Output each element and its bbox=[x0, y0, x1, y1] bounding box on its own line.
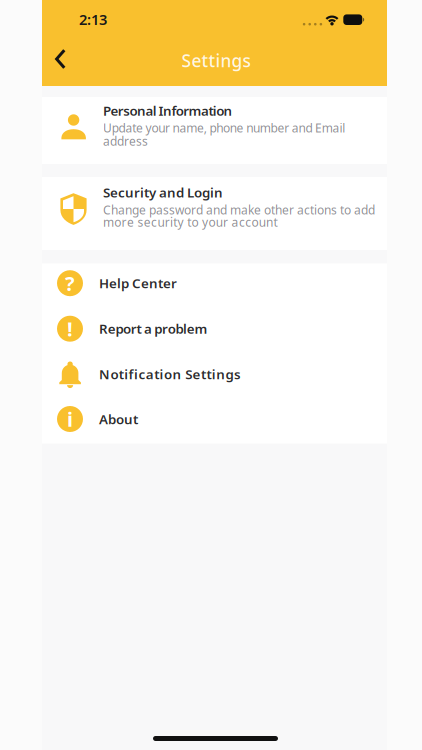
button[interactable]: i bbox=[42, 396, 387, 441]
button[interactable]: Back bbox=[44, 42, 78, 76]
staticText: Personal Information bbox=[103, 102, 233, 119]
staticText: About bbox=[99, 410, 138, 428]
staticText: i bbox=[67, 406, 73, 432]
staticText: ! bbox=[67, 315, 73, 342]
button[interactable]: Notification Settings bbox=[42, 351, 387, 396]
staticText: address bbox=[103, 133, 148, 149]
staticText: Settings bbox=[181, 49, 250, 72]
button[interactable] bbox=[42, 177, 387, 250]
button[interactable]: ? bbox=[42, 261, 387, 306]
staticText: Update your name, phone number and Email bbox=[103, 120, 345, 136]
staticText: Report a problem bbox=[99, 320, 207, 337]
staticText: Security and Login bbox=[103, 183, 223, 201]
staticText: Notification Settings bbox=[99, 365, 241, 383]
staticText: 2:13 bbox=[79, 9, 107, 29]
button[interactable]: ! bbox=[42, 306, 387, 351]
staticText: Help Center bbox=[99, 274, 177, 292]
staticText: ? bbox=[65, 270, 75, 296]
staticText: Change password and make other actions t… bbox=[103, 202, 375, 218]
button[interactable] bbox=[42, 97, 387, 164]
staticText: more security to your account bbox=[103, 214, 277, 230]
